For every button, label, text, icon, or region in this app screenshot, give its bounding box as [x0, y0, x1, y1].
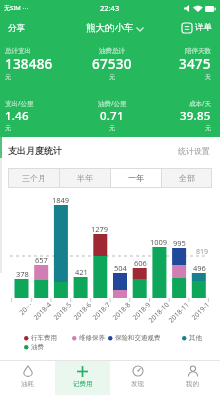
- staticText: 元: [109, 124, 115, 132]
- staticText: 995: [173, 238, 186, 248]
- staticText: 2018-5: [51, 300, 73, 322]
- button[interactable]: 一年: [111, 168, 161, 188]
- staticText: 支出/公里: [5, 99, 34, 108]
- staticText: 3475: [179, 55, 211, 73]
- staticText: 元: [5, 124, 11, 132]
- staticText: 我的: [186, 380, 199, 388]
- staticText: 2018-6: [71, 300, 93, 322]
- button[interactable]: 全部: [162, 168, 212, 188]
- staticText: 保险和交通规费: [115, 334, 161, 342]
- button[interactable]: 分享: [8, 23, 25, 34]
- staticText: 陪伴天数: [185, 47, 211, 55]
- staticText: 0.71: [100, 108, 124, 124]
- staticText: 半年: [77, 173, 93, 183]
- staticText: 记费用: [73, 380, 93, 388]
- staticText: 138486: [5, 55, 53, 73]
- staticText: 维修保养: [79, 334, 105, 342]
- staticText: 2019-1: [189, 300, 211, 322]
- staticText: 其他: [189, 334, 202, 342]
- button[interactable]: 详单: [182, 22, 212, 33]
- button[interactable]: 统计设置: [178, 146, 210, 156]
- staticText: 油费: [31, 343, 44, 351]
- staticText: 发现: [131, 380, 144, 388]
- staticText: 496: [193, 263, 206, 273]
- staticText: 20⋯: [17, 300, 34, 317]
- staticText: 总计支出: [5, 47, 31, 55]
- staticText: 元: [205, 124, 211, 132]
- staticText: 378: [16, 269, 29, 279]
- staticText: 2018-8: [110, 300, 132, 322]
- staticText: 1009: [150, 237, 168, 247]
- staticText: 1279: [91, 224, 109, 234]
- staticText: 606: [134, 258, 147, 268]
- button[interactable]: 发现: [110, 361, 165, 397]
- staticText: 全部: [179, 173, 195, 183]
- staticText: 详单: [195, 22, 212, 33]
- staticText: 2018-10: [147, 300, 171, 325]
- staticText: 39.85: [180, 108, 211, 124]
- staticText: 无SIM ⋯: [4, 4, 29, 12]
- staticText: 成本/天: [189, 99, 211, 108]
- staticText: 油耗: [21, 380, 34, 388]
- staticText: 2018-11: [167, 300, 191, 325]
- staticText: 三个月: [22, 173, 46, 183]
- staticText: 元: [5, 73, 11, 81]
- staticText: 元: [109, 73, 115, 81]
- staticText: 1849: [52, 195, 70, 205]
- button[interactable]: 半年: [60, 168, 110, 188]
- button[interactable]: 我的: [165, 361, 220, 397]
- staticText: 2018-9: [130, 300, 152, 322]
- staticText: 2018-7: [90, 300, 112, 322]
- staticText: 1.46: [5, 108, 29, 124]
- staticText: 油费/公里: [98, 99, 127, 108]
- staticText: 支出月度统计: [8, 145, 62, 156]
- staticText: 天: [205, 73, 211, 81]
- staticText: 657: [35, 255, 48, 265]
- staticText: 行车费用: [31, 334, 57, 342]
- staticText: 504: [114, 263, 127, 273]
- button[interactable]: 油耗: [0, 361, 55, 397]
- staticText: 油费总计: [99, 47, 125, 55]
- staticText: 421: [75, 267, 88, 277]
- staticText: 819: [196, 247, 209, 257]
- staticText: 2018-4: [31, 300, 53, 322]
- staticText: 67530: [92, 55, 132, 73]
- staticText: 22:43: [100, 3, 120, 13]
- button[interactable]: 记费用: [55, 361, 110, 395]
- staticText: 一年: [128, 173, 144, 183]
- button[interactable]: 三个月: [8, 168, 59, 188]
- button[interactable]: 熊大的小车: [86, 22, 134, 34]
